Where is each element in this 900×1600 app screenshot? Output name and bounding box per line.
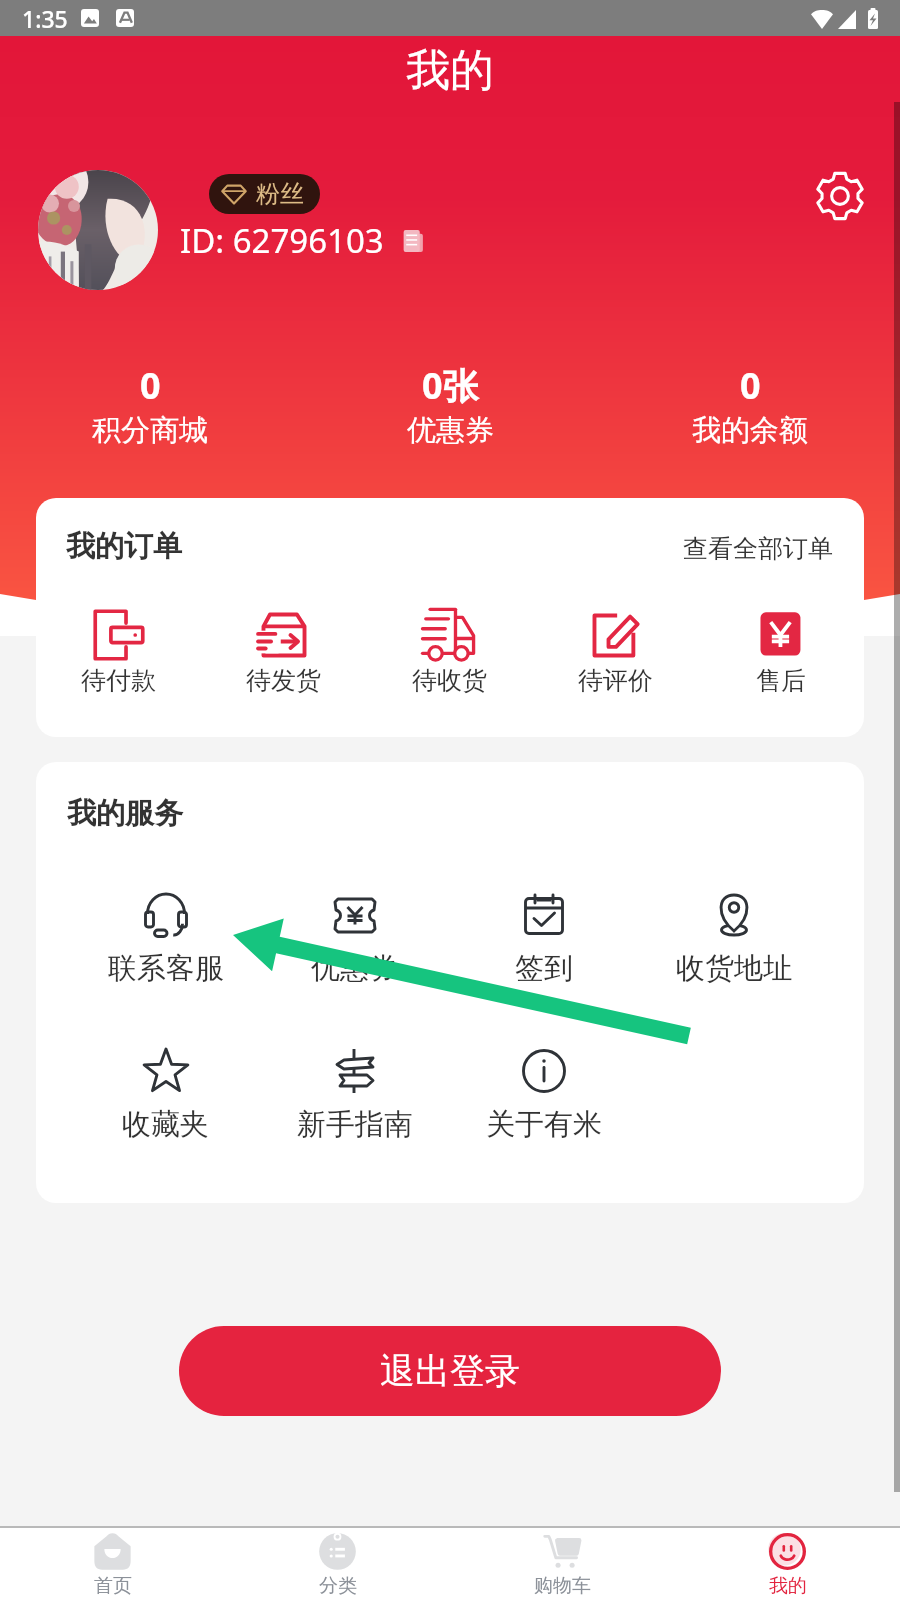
staticText: 签到 (515, 950, 573, 987)
button[interactable]: 售后 (698, 608, 864, 696)
staticText: 0 (140, 361, 161, 410)
button[interactable]: 购物车 (450, 1528, 675, 1600)
staticText: 积分商城 (92, 412, 208, 449)
staticText: 0 (740, 361, 761, 410)
button[interactable]: 首页 (0, 1528, 225, 1600)
button[interactable]: 签到 (449, 890, 639, 987)
button[interactable]: 优惠券 (260, 890, 449, 987)
button[interactable]: 待付款 (36, 608, 201, 696)
button[interactable]: 退出登录 (179, 1326, 721, 1416)
staticText: 优惠券 (311, 950, 398, 987)
staticText: 我的 (769, 1574, 807, 1598)
button[interactable]: 收货地址 (639, 890, 829, 987)
button[interactable]: 新手指南 (260, 1046, 449, 1143)
button[interactable]: 我的 (675, 1528, 900, 1600)
staticText: 优惠券 (407, 412, 494, 449)
staticText: 待发货 (246, 665, 321, 696)
button[interactable]: 查看全部订单 (683, 533, 833, 564)
button[interactable]: 待发货 (201, 608, 366, 696)
button[interactable]: 收藏夹 (71, 1046, 260, 1143)
staticText: 退出登录 (380, 1349, 520, 1393)
staticText: 待评价 (578, 665, 653, 696)
staticText: 粉丝 (256, 179, 304, 209)
button[interactable]: 关于有米 (449, 1046, 639, 1143)
button[interactable]: Avatar (38, 170, 158, 290)
button[interactable]: Settings (812, 168, 868, 224)
button[interactable]: 待收货 (366, 608, 532, 696)
staticText: 0张 (422, 361, 479, 410)
staticText: 分类 (319, 1574, 357, 1598)
staticText: 我的 (0, 43, 900, 98)
staticText: 首页 (94, 1574, 132, 1598)
button[interactable]: 分类 (225, 1528, 450, 1600)
staticText: 新手指南 (297, 1106, 413, 1143)
staticText: 待付款 (81, 665, 156, 696)
staticText: 联系客服 (108, 950, 224, 987)
staticText: 查看全部订单 (683, 533, 833, 564)
staticText: 我的订单 (66, 528, 182, 565)
staticText: ID: 62796103 (180, 218, 384, 263)
staticText: 我的服务 (67, 795, 183, 832)
button[interactable]: 0张 (300, 361, 600, 451)
button[interactable]: Copy ID (400, 228, 426, 254)
staticText: 购物车 (534, 1574, 591, 1598)
staticText: 收藏夹 (122, 1106, 209, 1143)
staticText: 1:35 (22, 3, 68, 34)
button[interactable]: 0 (600, 361, 900, 451)
button[interactable]: 联系客服 (71, 890, 260, 987)
button[interactable]: 粉丝 (209, 174, 320, 214)
button[interactable]: 0 (0, 361, 300, 451)
button[interactable]: 待评价 (532, 608, 698, 696)
staticText: 待收货 (412, 665, 487, 696)
staticText: 我的余额 (692, 412, 808, 449)
staticText: 收货地址 (676, 950, 792, 987)
staticText: 关于有米 (486, 1106, 602, 1143)
staticText: 售后 (756, 665, 806, 696)
